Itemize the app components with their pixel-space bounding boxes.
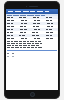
button[interactable] [6, 34, 58, 37]
button[interactable] [6, 16, 58, 19]
button[interactable] [6, 28, 58, 31]
button[interactable] [6, 31, 58, 34]
button[interactable] [6, 25, 58, 28]
button[interactable] [6, 14, 58, 16]
button[interactable] [6, 9, 58, 14]
button[interactable] [6, 37, 58, 40]
button[interactable] [6, 22, 58, 25]
button[interactable] [6, 19, 58, 22]
button[interactable]: Home [30, 92, 35, 97]
